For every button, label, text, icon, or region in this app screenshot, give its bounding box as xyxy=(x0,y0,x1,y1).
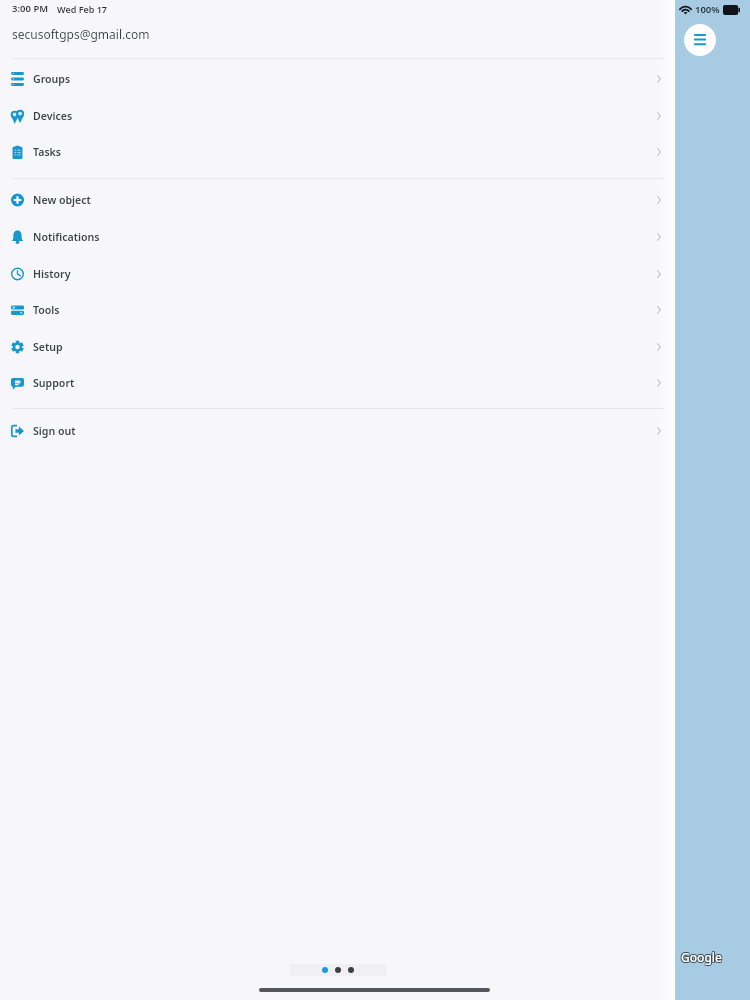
staticText: 100% xyxy=(695,3,720,16)
button[interactable]: New object xyxy=(0,181,675,218)
staticText: Setup xyxy=(33,340,63,354)
button[interactable]: Open navigation menu xyxy=(684,24,716,56)
button[interactable]: Support xyxy=(0,364,675,401)
staticText: Google xyxy=(680,950,721,966)
staticText: Support xyxy=(33,376,75,390)
staticText: Devices xyxy=(33,109,73,123)
button[interactable]: Setup xyxy=(0,328,675,365)
staticText: Google xyxy=(682,949,723,965)
staticText: New object xyxy=(33,193,91,207)
staticText: History xyxy=(33,267,71,281)
staticText: Notifications xyxy=(33,230,100,244)
button[interactable]: Tools xyxy=(0,291,675,328)
staticText: Google xyxy=(682,948,723,964)
staticText: Google xyxy=(680,948,721,964)
staticText: Tools xyxy=(33,303,60,317)
staticText: secusoftgps@gmail.com xyxy=(12,26,150,42)
button[interactable]: Devices xyxy=(0,97,675,134)
button[interactable]: Tasks xyxy=(0,133,675,170)
staticText: Sign out xyxy=(33,424,76,438)
staticText: Tasks xyxy=(33,145,62,159)
staticText: Wed Feb 17 xyxy=(57,3,108,15)
button[interactable]: Notifications xyxy=(0,218,675,255)
button[interactable]: History xyxy=(0,255,675,292)
staticText: Google xyxy=(681,949,722,965)
staticText: Google xyxy=(682,950,723,966)
staticText: Groups xyxy=(33,72,71,86)
button[interactable]: Groups xyxy=(0,60,675,97)
staticText: Google xyxy=(681,948,722,964)
staticText: Google xyxy=(680,949,721,965)
staticText: 3:00 PM xyxy=(12,2,49,15)
button[interactable]: Sign out xyxy=(0,412,675,449)
staticText: Google xyxy=(681,950,722,966)
